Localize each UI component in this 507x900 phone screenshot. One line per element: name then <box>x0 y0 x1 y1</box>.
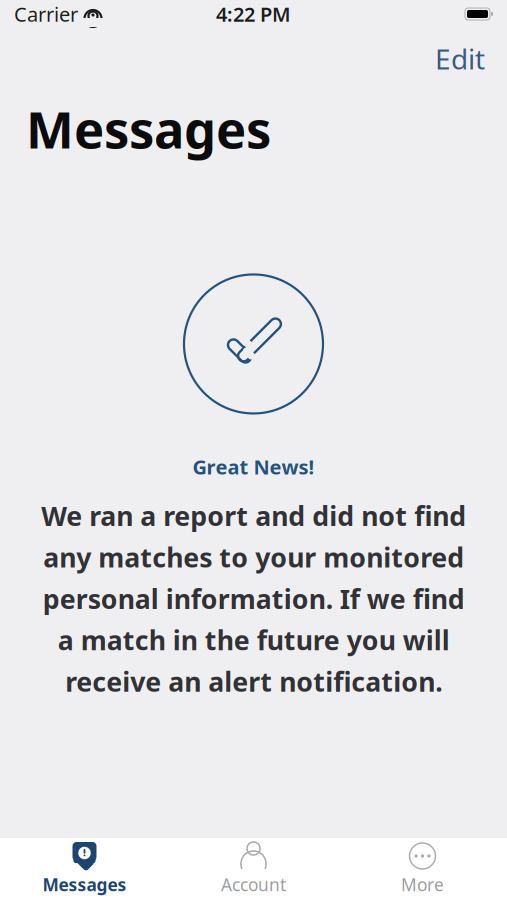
staticText: More <box>401 873 444 896</box>
button[interactable]: Messages <box>0 838 169 900</box>
button[interactable]: Edit <box>427 36 493 81</box>
staticText: Messages <box>42 873 126 896</box>
staticText: Messages <box>26 95 271 162</box>
staticText: Great News! <box>192 453 314 480</box>
button[interactable]: Account <box>169 838 338 900</box>
staticText: Carrier <box>14 1 78 27</box>
staticText: 4:22 PM <box>216 1 291 27</box>
button[interactable]: More <box>338 838 507 900</box>
staticText: We ran a report and did not find any mat… <box>41 498 466 699</box>
staticText: Account <box>221 873 286 896</box>
staticText: Edit <box>435 40 485 77</box>
